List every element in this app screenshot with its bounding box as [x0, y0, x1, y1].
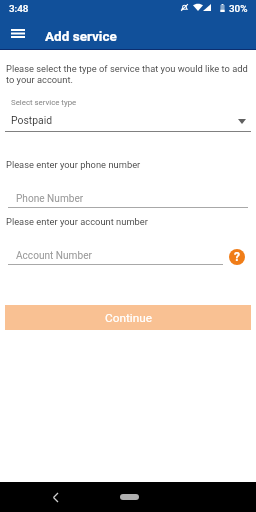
button[interactable]: Back [47, 489, 63, 505]
staticText: 3:48 [9, 3, 29, 15]
button[interactable]: Phone Number [8, 191, 248, 210]
staticText: ? [234, 250, 240, 264]
button[interactable]: Postpaid [5, 112, 251, 134]
staticText: Phone Number [16, 193, 84, 205]
staticText: Select service type [11, 98, 77, 107]
staticText: 30% [229, 3, 248, 15]
staticText: Account Number [16, 250, 92, 262]
button[interactable]: Help about account number [229, 249, 245, 265]
button[interactable]: Continue [5, 305, 251, 330]
staticText: Add service [45, 28, 117, 44]
staticText: Postpaid [11, 114, 53, 126]
button[interactable]: Account Number [8, 248, 223, 266]
button[interactable]: Open navigation menu [6, 21, 30, 45]
staticText: Please enter your phone number [6, 159, 141, 170]
button[interactable]: Home [120, 494, 139, 500]
staticText: Continue [105, 311, 152, 325]
staticText: Please select the type of service that y… [6, 63, 248, 85]
staticText: Please enter your account number [6, 216, 148, 227]
